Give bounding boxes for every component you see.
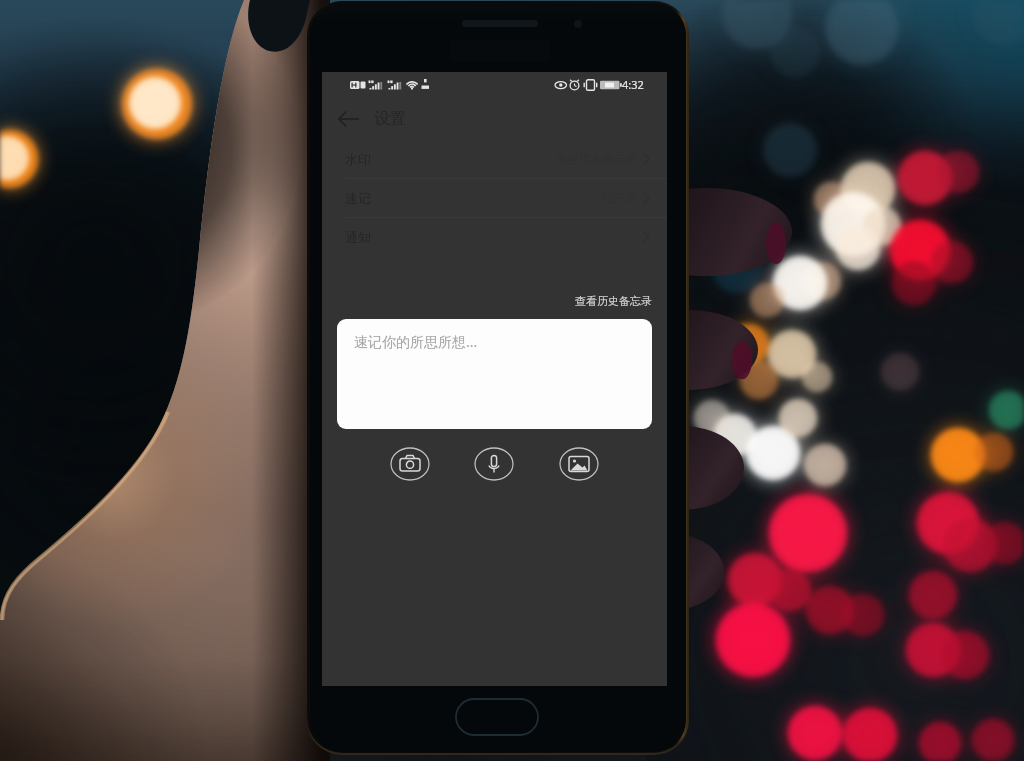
button[interactable]: Camera [390, 447, 430, 481]
button[interactable]: 速记你的所思所想... [337, 319, 652, 429]
button[interactable]: 查看历史备忘录 [575, 294, 652, 308]
staticText: 速记你的所思所想... [354, 332, 478, 351]
staticText: 4:32 [622, 77, 644, 92]
staticText: 通知 [345, 229, 371, 245]
staticText: 速记 [345, 190, 371, 206]
staticText: 设置 [374, 109, 406, 129]
button[interactable]: Voice [474, 447, 514, 481]
staticText: 水印 [345, 151, 371, 167]
button[interactable]: Gallery [559, 447, 599, 481]
